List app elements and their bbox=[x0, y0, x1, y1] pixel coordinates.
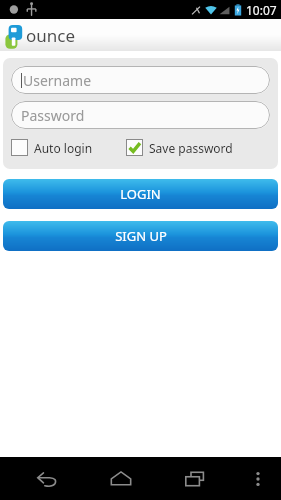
staticText: LOGIN bbox=[120, 185, 161, 203]
staticText: SIGN UP bbox=[115, 227, 167, 245]
button[interactable]: Home bbox=[99, 457, 143, 500]
button[interactable]: Recent apps bbox=[173, 457, 217, 500]
button[interactable]: Back bbox=[25, 457, 69, 500]
button[interactable]: SIGN UP bbox=[3, 221, 278, 251]
button[interactable]: Save password bbox=[126, 137, 270, 158]
button[interactable]: More options bbox=[243, 457, 273, 500]
staticText: ounce bbox=[26, 24, 76, 47]
staticText: Auto login bbox=[34, 140, 93, 156]
button[interactable]: Auto login bbox=[11, 137, 126, 158]
button[interactable]: Username bbox=[11, 66, 270, 94]
button[interactable]: LOGIN bbox=[3, 179, 278, 209]
staticText: Password bbox=[21, 106, 85, 125]
button[interactable]: Password bbox=[11, 101, 270, 129]
staticText: 10:07 bbox=[246, 2, 277, 18]
staticText: Save password bbox=[149, 140, 233, 156]
staticText: Username bbox=[23, 71, 92, 90]
